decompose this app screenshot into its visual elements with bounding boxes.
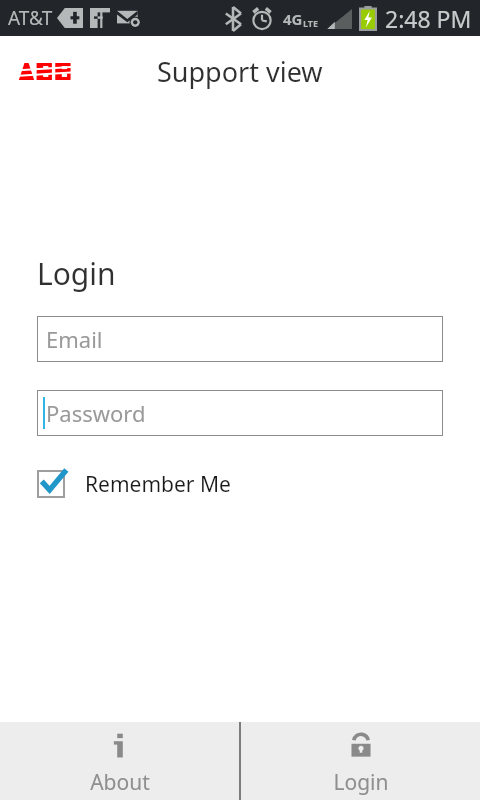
staticText: Remember Me [85, 470, 231, 499]
button[interactable]: Password [37, 390, 443, 436]
staticText: Login [37, 253, 116, 294]
staticText: 4G [283, 9, 303, 29]
button[interactable]: Login [241, 722, 480, 800]
staticText: LTE [303, 17, 319, 29]
button[interactable]: Email [37, 316, 443, 362]
staticText: AT&T [8, 5, 53, 31]
button[interactable]: About [0, 722, 239, 800]
staticText: Password [46, 398, 146, 428]
staticText: Login [333, 768, 389, 797]
button[interactable]: Remember Me [37, 464, 231, 504]
staticText: Email [46, 324, 103, 354]
staticText: About [90, 768, 150, 797]
staticText: 2:48 PM [385, 3, 472, 34]
staticText: Support view [157, 53, 323, 90]
